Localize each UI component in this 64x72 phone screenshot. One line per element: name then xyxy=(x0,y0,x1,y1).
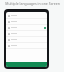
button[interactable] xyxy=(6,19,47,25)
staticText: Multiple languages in one Screen xyxy=(5,1,60,6)
button[interactable] xyxy=(6,37,47,43)
button[interactable] xyxy=(6,25,47,31)
button[interactable] xyxy=(6,31,47,37)
button[interactable] xyxy=(6,43,47,49)
button[interactable] xyxy=(6,13,47,19)
